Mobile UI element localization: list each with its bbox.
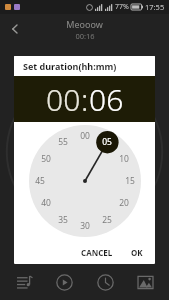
button[interactable]: OK [125, 243, 149, 262]
staticText: 10 [119, 153, 129, 165]
staticText: 15 [125, 175, 135, 187]
staticText: Set duration(hh:mm) [23, 60, 117, 72]
staticText: 35 [58, 214, 68, 226]
button[interactable]: 40 [36, 193, 56, 213]
button[interactable]: 45 [30, 171, 50, 191]
button[interactable]: 05 [97, 132, 117, 152]
staticText: 05 [102, 136, 112, 148]
button[interactable]: 30 [75, 216, 95, 236]
button[interactable]: 20 [114, 193, 134, 213]
staticText: 50 [41, 153, 51, 165]
button[interactable]: 15 [120, 171, 140, 191]
button[interactable]: 10 [114, 149, 134, 169]
button[interactable]: 25 [97, 210, 117, 230]
staticText: 00 [80, 130, 90, 142]
staticText: Meooow [66, 18, 103, 30]
staticText: 25 [102, 214, 112, 226]
button[interactable]: Gallery [128, 267, 162, 297]
staticText: 40 [41, 197, 51, 209]
staticText: OK [131, 247, 143, 258]
button[interactable]: 00 [46, 79, 81, 120]
button[interactable]: Timer [88, 267, 122, 297]
button[interactable]: 55 [53, 132, 73, 152]
staticText: CANCEL [81, 247, 113, 258]
staticText: 00:16 [75, 31, 95, 41]
staticText: 17:55 [145, 2, 165, 12]
button[interactable]: 50 [36, 149, 56, 169]
button[interactable]: 00 [75, 126, 95, 146]
staticText: : [81, 79, 89, 120]
button[interactable]: 06 [89, 79, 124, 120]
staticText: 06 [89, 79, 124, 120]
button[interactable]: Back [0, 14, 30, 44]
staticText: 77% [115, 2, 129, 12]
staticText: 45 [35, 175, 45, 187]
staticText: 20 [119, 197, 129, 209]
button[interactable]: 35 [53, 210, 73, 230]
staticText: 30 [80, 220, 90, 232]
staticText: 00 [46, 79, 81, 120]
button[interactable]: Playlist [7, 267, 41, 297]
button[interactable]: Play [47, 267, 81, 297]
button[interactable]: CANCEL [75, 243, 119, 262]
staticText: 55 [58, 136, 68, 148]
